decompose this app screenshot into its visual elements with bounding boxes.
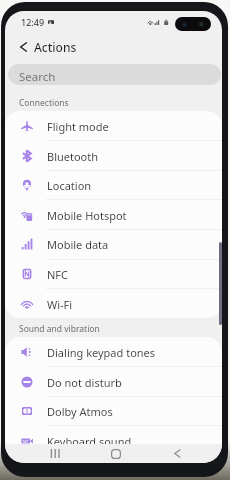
button[interactable]: Search: [8, 64, 221, 85]
staticText: Sound and vibration: [19, 323, 100, 335]
staticText: Dolby Atmos: [47, 404, 113, 419]
button[interactable]: Navigate up: [15, 39, 31, 55]
staticText: Keyboard sound: [47, 434, 132, 449]
button[interactable]: Flight mode: [5, 111, 222, 141]
button[interactable]: Dialing keypad tones: [5, 337, 222, 367]
staticText: Flight mode: [47, 119, 109, 134]
button[interactable]: Dolby Atmos: [5, 396, 222, 426]
staticText: Do not disturb: [47, 375, 122, 390]
staticText: Wi-Fi: [47, 297, 73, 312]
button[interactable]: Recent apps: [43, 444, 67, 463]
staticText: Actions: [34, 39, 77, 55]
staticText: Search: [19, 69, 56, 85]
button[interactable]: Wi-Fi: [5, 289, 222, 318]
button[interactable]: Do not disturb: [5, 367, 222, 397]
staticText: Bluetooth: [47, 149, 99, 164]
staticText: Connections: [19, 97, 69, 109]
staticText: Mobile Hotspot: [47, 208, 127, 223]
button[interactable]: Mobile data: [5, 229, 222, 259]
button[interactable]: Home: [104, 444, 128, 463]
button[interactable]: Keyboard sound: [5, 426, 222, 455]
staticText: NFC: [47, 267, 69, 282]
button[interactable]: Back: [165, 444, 189, 463]
button[interactable]: NFC: [5, 259, 222, 289]
button[interactable]: Bluetooth: [5, 141, 222, 171]
staticText: Dialing keypad tones: [47, 345, 156, 360]
other: Status icons: [147, 19, 169, 25]
staticText: 12:49: [21, 16, 45, 28]
staticText: Mobile data: [47, 237, 109, 252]
staticText: Location: [47, 178, 92, 193]
button[interactable]: Mobile Hotspot: [5, 200, 222, 230]
button[interactable]: Location: [5, 170, 222, 200]
